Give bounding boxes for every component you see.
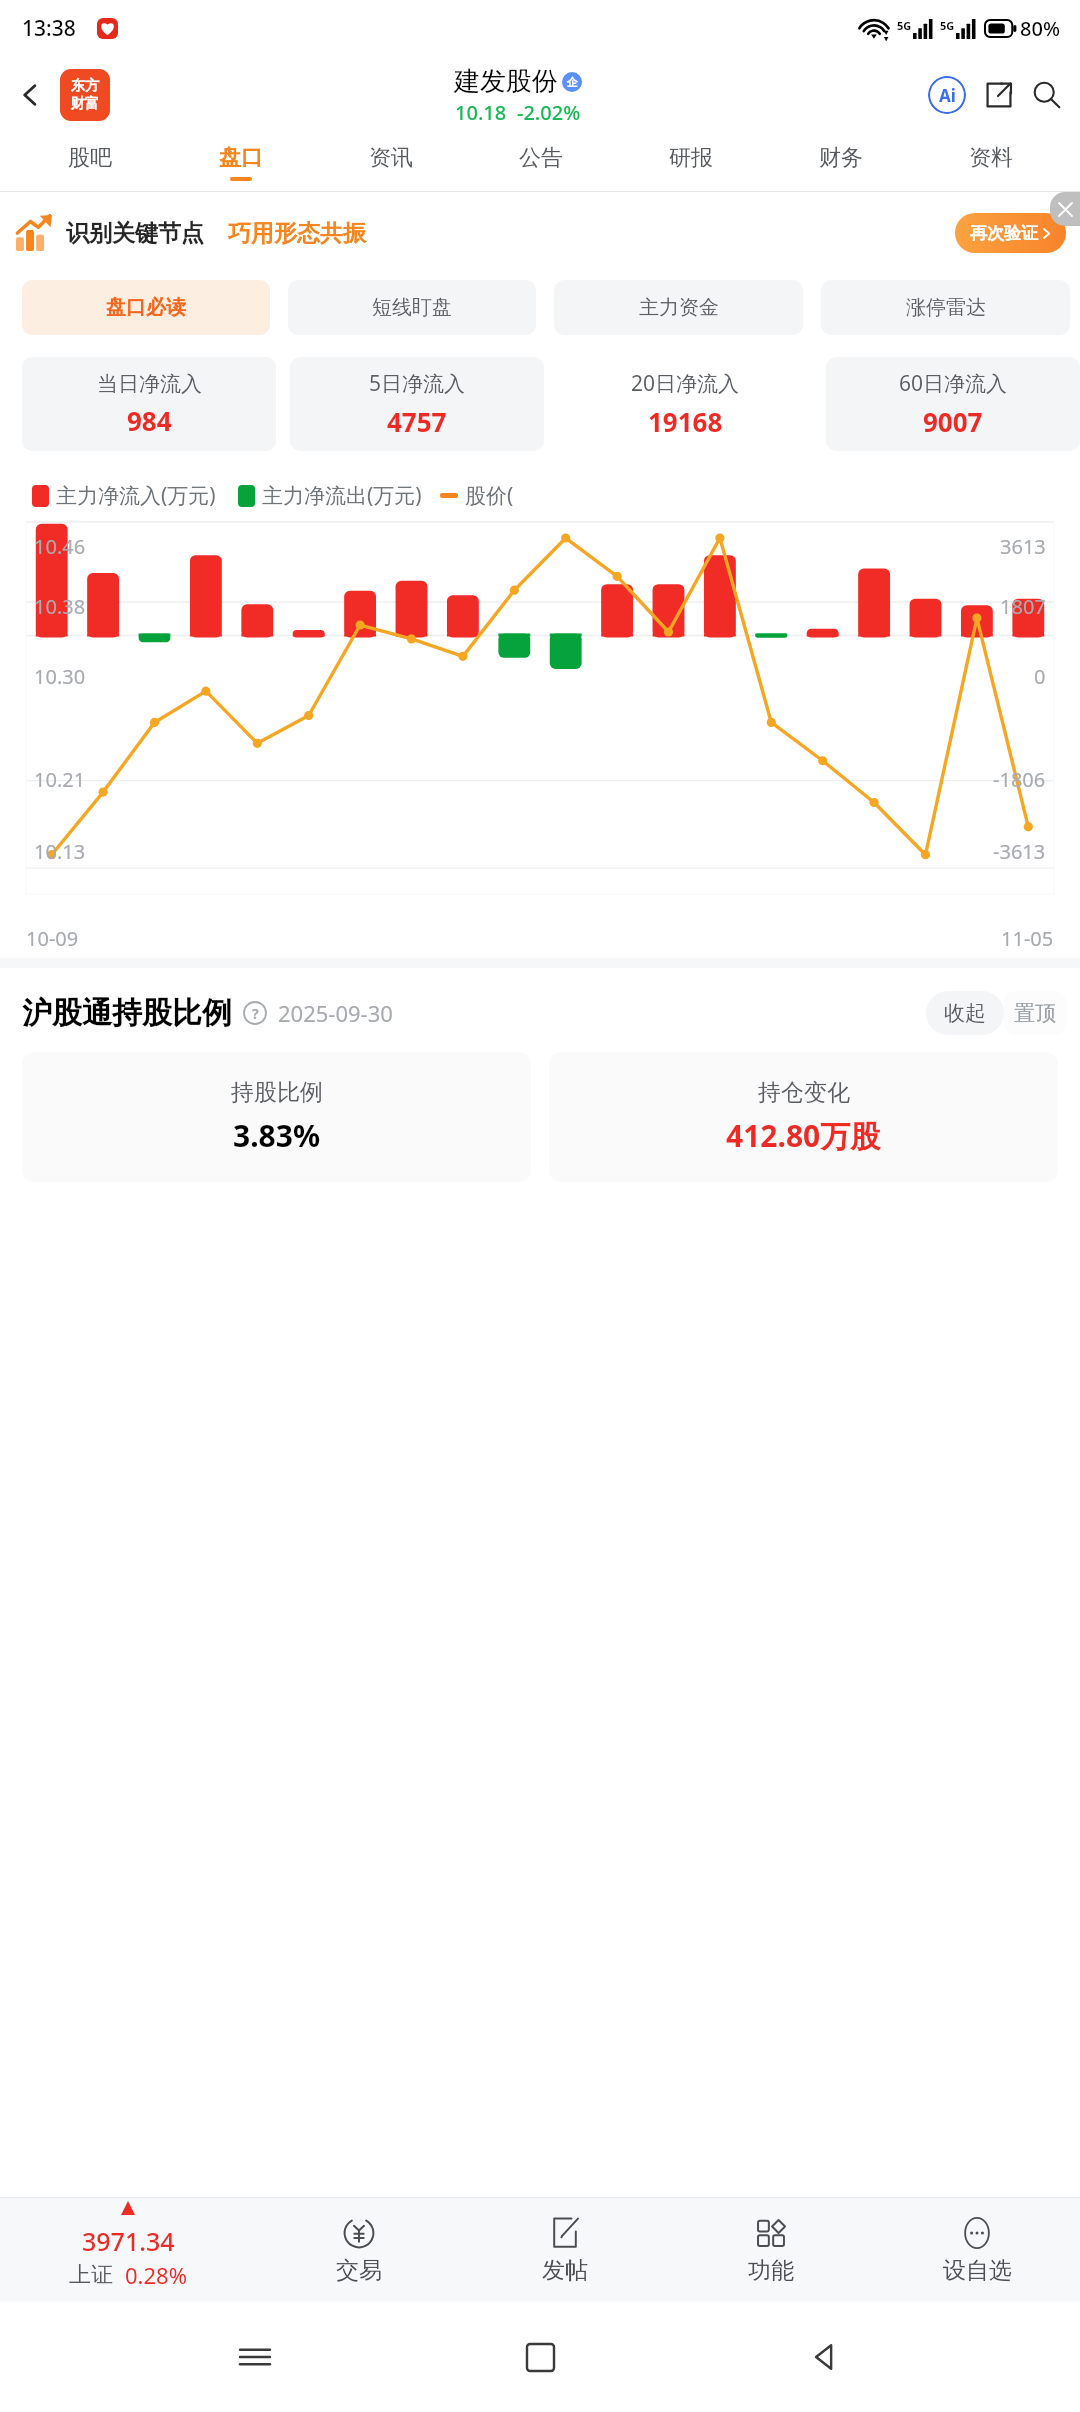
staticText: 资料 <box>969 144 1013 172</box>
staticText: 10.46 <box>34 533 86 560</box>
button[interactable]: 再次验证 <box>955 213 1066 253</box>
staticText: 盘口 <box>219 144 263 172</box>
button[interactable]: 当日净流入 <box>22 357 276 451</box>
staticText: 主力净流出(万元) <box>262 481 422 510</box>
staticText: 置顶 <box>1014 1000 1056 1026</box>
button[interactable]: 持仓变化 <box>549 1052 1058 1182</box>
staticText: 设自选 <box>943 2256 1012 2285</box>
staticText: 3971.34 <box>82 2224 175 2258</box>
button[interactable]: 资讯 <box>316 133 466 191</box>
staticText: 10.21 <box>34 766 86 793</box>
staticText: 收起 <box>944 1000 986 1026</box>
staticText: 上证 <box>69 2261 113 2289</box>
staticText: 10.30 <box>34 663 86 690</box>
button[interactable]: East Money <box>60 69 110 121</box>
staticText: 持股比例 <box>231 1078 323 1107</box>
button[interactable]: Help <box>242 1000 268 1026</box>
staticText: 0.28% <box>125 2260 187 2290</box>
staticText: 当日净流入 <box>97 371 202 397</box>
button[interactable]: Back <box>6 71 54 119</box>
button[interactable]: 涨停雷达 <box>821 280 1070 335</box>
staticText: 股价( <box>465 481 514 510</box>
button[interactable]: 研报 <box>616 133 766 191</box>
staticText: 10.13 <box>34 838 86 865</box>
staticText: 盘口必读 <box>106 295 186 320</box>
button[interactable]: 3971.34 <box>0 2198 256 2302</box>
staticText: 13:38 <box>22 14 76 43</box>
staticText: 识别关键节点 <box>66 219 204 248</box>
button[interactable]: Share <box>976 72 1022 118</box>
staticText: 涨停雷达 <box>906 295 986 320</box>
staticText: 沪股通持股比例 <box>22 994 232 1032</box>
staticText: 412.80万股 <box>726 1115 881 1156</box>
staticText: 财务 <box>819 144 863 172</box>
button[interactable]: 盘口 <box>165 133 316 191</box>
staticText: -3613 <box>993 838 1046 865</box>
staticText: 股吧 <box>68 144 112 172</box>
staticText: 20日净流入 <box>631 369 740 398</box>
staticText: ? <box>252 1004 259 1023</box>
staticText: 3.83% <box>233 1115 320 1156</box>
staticText: 交易 <box>336 2256 382 2285</box>
button[interactable]: 交易 <box>256 2198 462 2302</box>
staticText: 4757 <box>387 404 447 439</box>
staticText: 短线盯盘 <box>372 295 452 320</box>
staticText: 60日净流入 <box>899 369 1008 398</box>
button[interactable]: 发帖 <box>462 2198 668 2302</box>
staticText: 10-09 <box>26 925 79 952</box>
button[interactable]: 股吧 <box>14 133 165 191</box>
staticText: 主力资金 <box>639 295 719 320</box>
staticText: 东方 <box>71 77 99 95</box>
staticText: 5G <box>897 18 912 33</box>
button[interactable]: 20日净流入 <box>558 357 812 451</box>
staticText: 5日净流入 <box>369 369 466 398</box>
staticText: 80% <box>1020 15 1060 42</box>
staticText: 财富 <box>71 95 99 113</box>
button[interactable]: 5日净流入 <box>290 357 544 451</box>
button[interactable]: 主力资金 <box>554 280 803 335</box>
staticText: Ai <box>939 84 956 107</box>
button[interactable]: 功能 <box>668 2198 874 2302</box>
staticText: -1806 <box>993 766 1046 793</box>
button[interactable]: 收起 <box>926 991 1004 1035</box>
button[interactable]: Back <box>795 2327 855 2387</box>
button[interactable]: 资料 <box>916 133 1066 191</box>
staticText: 19168 <box>648 404 723 439</box>
staticText: 10.18 <box>455 99 507 126</box>
staticText: 主力净流入(万元) <box>56 481 216 510</box>
staticText: 巧用形态共振 <box>228 219 366 248</box>
button[interactable]: Home <box>510 2327 570 2387</box>
button[interactable]: Search <box>1024 72 1070 118</box>
button[interactable]: 盘口必读 <box>22 280 270 335</box>
button[interactable]: Close <box>1050 192 1080 226</box>
button[interactable]: AI assistant <box>924 72 970 118</box>
button[interactable]: 60日净流入 <box>826 357 1080 451</box>
button[interactable]: 公告 <box>466 133 616 191</box>
staticText: 10.38 <box>34 593 86 620</box>
button[interactable]: 持股比例 <box>22 1052 531 1182</box>
staticText: 企 <box>567 75 578 89</box>
button[interactable]: Recents <box>225 2327 285 2387</box>
button[interactable]: 财务 <box>766 133 916 191</box>
staticText: 资讯 <box>369 144 413 172</box>
staticText: -2.02% <box>517 99 581 126</box>
staticText: 0 <box>1034 663 1046 690</box>
staticText: 公告 <box>519 144 563 172</box>
staticText: 5G <box>940 18 955 33</box>
staticText: 建发股份 <box>454 65 558 98</box>
staticText: 3613 <box>1000 533 1046 560</box>
staticText: 984 <box>127 403 172 438</box>
staticText: 研报 <box>669 144 713 172</box>
staticText: 再次验证 <box>970 223 1038 244</box>
staticText: 功能 <box>748 2256 794 2285</box>
staticText: 发帖 <box>542 2256 588 2285</box>
button[interactable]: 设自选 <box>874 2198 1080 2302</box>
button[interactable]: 置顶 <box>1004 991 1066 1035</box>
staticText: 持仓变化 <box>758 1078 850 1107</box>
staticText: 9007 <box>923 404 983 439</box>
staticText: 1807 <box>1000 593 1046 620</box>
staticText: 2025-09-30 <box>278 998 393 1028</box>
staticText: 11-05 <box>1001 925 1054 952</box>
button[interactable]: 短线盯盘 <box>288 280 536 335</box>
